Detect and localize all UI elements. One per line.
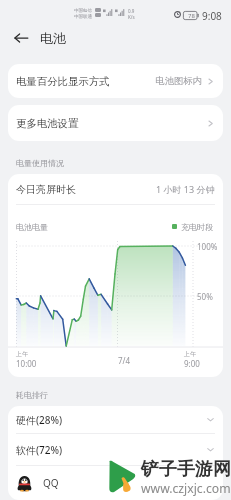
- button[interactable]: Back: [11, 28, 31, 48]
- staticText: 软件(72%): [16, 443, 63, 457]
- staticText: 铲子手游网: [141, 458, 231, 481]
- staticText: 耗电排行: [16, 390, 48, 400]
- button[interactable]: 今日亮屏时长: [8, 174, 223, 204]
- staticText: www.czjxjc.com: [141, 480, 231, 497]
- staticText: 7/4: [118, 355, 131, 366]
- staticText: 0.9: [128, 8, 135, 14]
- staticText: 充电时段: [181, 222, 213, 232]
- button[interactable]: 硬件(28%): [8, 406, 223, 433]
- staticText: 电量使用情况: [16, 158, 64, 168]
- staticText: 中国联通: [74, 14, 92, 20]
- button[interactable]: 更多电池设置: [8, 105, 223, 141]
- staticText: QQ: [43, 476, 59, 490]
- staticText: 电量百分比显示方式: [16, 75, 110, 88]
- button[interactable]: 电量百分比显示方式: [8, 64, 223, 98]
- staticText: 10:00: [16, 358, 37, 369]
- staticText: 9:08: [202, 9, 222, 23]
- staticText: 中国电信: [74, 8, 92, 14]
- staticText: 电池: [40, 30, 66, 46]
- staticText: 100%: [197, 241, 218, 252]
- button[interactable]: QQ: [8, 466, 223, 500]
- staticText: 上午: [184, 350, 196, 358]
- staticText: 电池图标内: [155, 75, 202, 87]
- staticText: K/s: [128, 14, 135, 20]
- staticText: 50%: [197, 291, 213, 302]
- staticText: 78: [188, 12, 195, 20]
- staticText: 硬件(28%): [16, 413, 63, 427]
- staticText: 9:00: [184, 358, 200, 369]
- staticText: 电池电量: [16, 222, 48, 232]
- staticText: 上午: [16, 350, 28, 358]
- staticText: 更多电池设置: [16, 117, 79, 130]
- staticText: 1 小时 13 分钟: [156, 183, 215, 195]
- staticText: 今日亮屏时长: [16, 183, 76, 196]
- button[interactable]: 软件(72%): [8, 434, 223, 465]
